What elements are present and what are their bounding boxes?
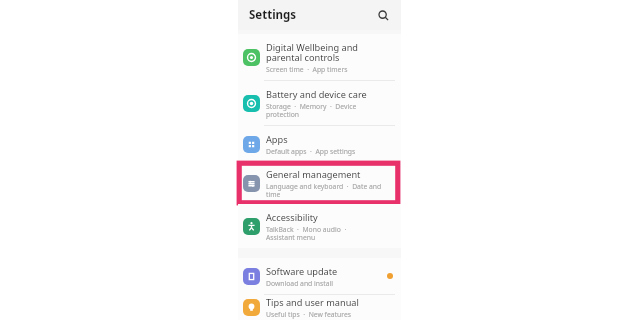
button[interactable]: General management bbox=[238, 162, 401, 204]
staticText: Download and install bbox=[266, 279, 334, 288]
staticText: Battery and device care bbox=[266, 88, 367, 101]
button[interactable]: Search bbox=[373, 5, 393, 25]
staticText: Tips and user manual bbox=[266, 296, 359, 309]
staticText: Storage · Memory · Device protection bbox=[266, 102, 357, 119]
button[interactable]: Accessibility bbox=[238, 204, 401, 248]
staticText: Apps bbox=[266, 133, 288, 146]
button[interactable]: Battery and device care bbox=[238, 81, 401, 125]
staticText: Language and keyboard · Date and time bbox=[266, 182, 382, 199]
staticText: TalkBack · Mono audio · Assistant menu bbox=[266, 225, 347, 242]
staticText: Useful tips · New features bbox=[266, 310, 352, 319]
staticText: Software update bbox=[266, 265, 338, 278]
button[interactable]: Software update bbox=[238, 258, 401, 294]
button[interactable]: Digital Wellbeing and parental controls bbox=[238, 34, 401, 80]
staticText: General management bbox=[266, 168, 361, 181]
button[interactable]: Apps bbox=[238, 126, 401, 162]
staticText: Accessibility bbox=[266, 211, 318, 224]
staticText: Screen time · App timers bbox=[266, 65, 348, 74]
staticText: Digital Wellbeing and parental controls bbox=[266, 41, 359, 64]
staticText: Default apps · App settings bbox=[266, 147, 356, 156]
staticText: Settings bbox=[249, 7, 297, 23]
button[interactable]: Tips and user manual bbox=[238, 295, 401, 320]
